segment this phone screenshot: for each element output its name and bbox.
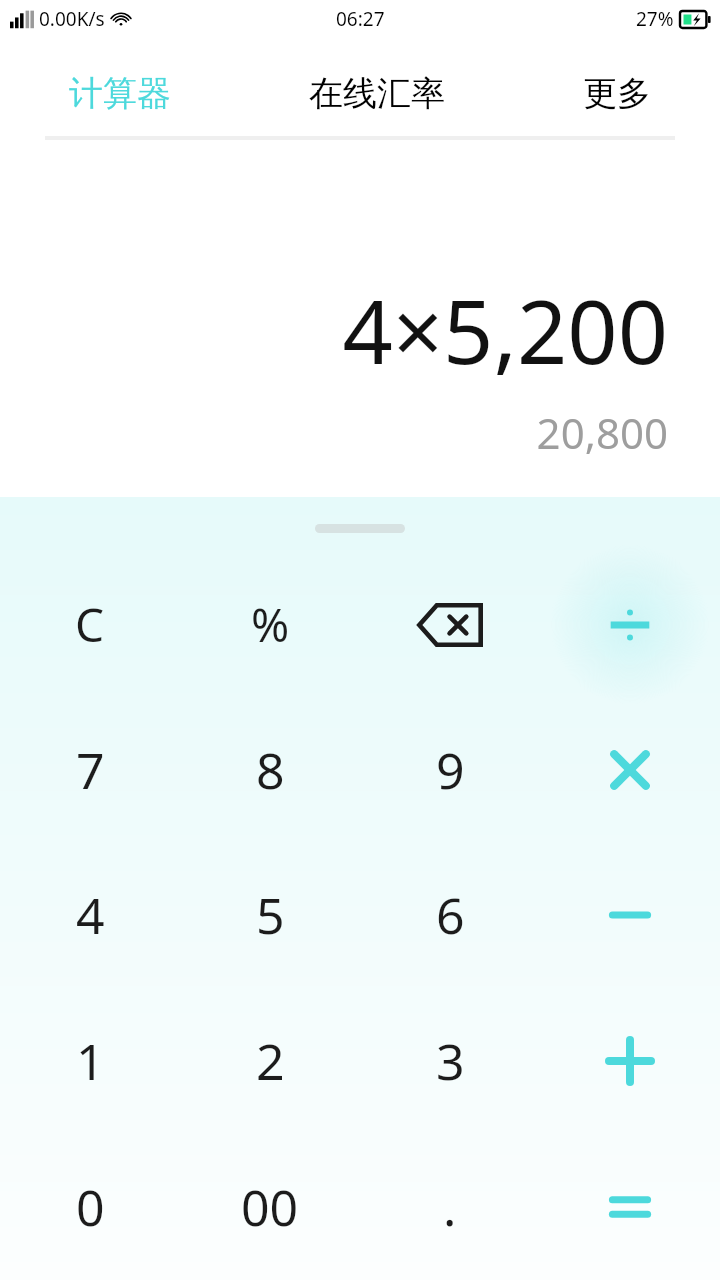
button[interactable]: 1 [0,988,180,1134]
staticText: 4×5,200 [342,270,668,390]
button[interactable]: % [180,552,360,697]
staticText: 8 [256,736,285,804]
button[interactable]: 00 [180,1134,360,1280]
button[interactable]: Divide [540,552,720,697]
staticText: 7 [76,736,105,804]
button[interactable]: 7 [0,697,180,842]
button[interactable]: 5 [180,842,360,988]
staticText: % [251,593,290,656]
button[interactable]: 更多 [573,68,661,119]
staticText: 更多 [583,72,651,115]
staticText: 2 [256,1027,285,1095]
button[interactable]: . [360,1134,540,1280]
staticText: 0.00K/s [39,6,105,32]
button[interactable]: 3 [360,988,540,1134]
button[interactable]: Multiply [540,697,720,842]
staticText: 计算器 [69,72,171,115]
button[interactable]: 0 [0,1134,180,1280]
staticText: 6 [436,881,465,949]
staticText: 9 [436,736,465,804]
staticText: 20,800 [536,404,668,461]
button[interactable]: 9 [360,697,540,842]
button[interactable]: C [0,552,180,697]
button[interactable]: 计算器 [59,68,181,119]
staticText: 4 [76,881,105,949]
button[interactable]: Minus [540,842,720,988]
staticText: 1 [76,1027,105,1095]
button[interactable]: 2 [180,988,360,1134]
staticText: 3 [436,1027,465,1095]
button[interactable]: 6 [360,842,540,988]
staticText: 00 [241,1173,299,1241]
staticText: 5 [256,881,285,949]
button[interactable]: 在线汇率 [299,68,455,119]
button[interactable]: Backspace [360,552,540,697]
staticText: 0 [76,1173,105,1241]
staticText: 在线汇率 [309,72,445,115]
button[interactable]: Equals [540,1134,720,1280]
staticText: . [443,1173,457,1241]
button[interactable]: 8 [180,697,360,842]
staticText: 06:27 [336,6,385,32]
button[interactable]: 4 [0,842,180,988]
button[interactable]: Plus [540,988,720,1134]
staticText: C [75,593,105,656]
staticText: 27% [636,6,674,32]
